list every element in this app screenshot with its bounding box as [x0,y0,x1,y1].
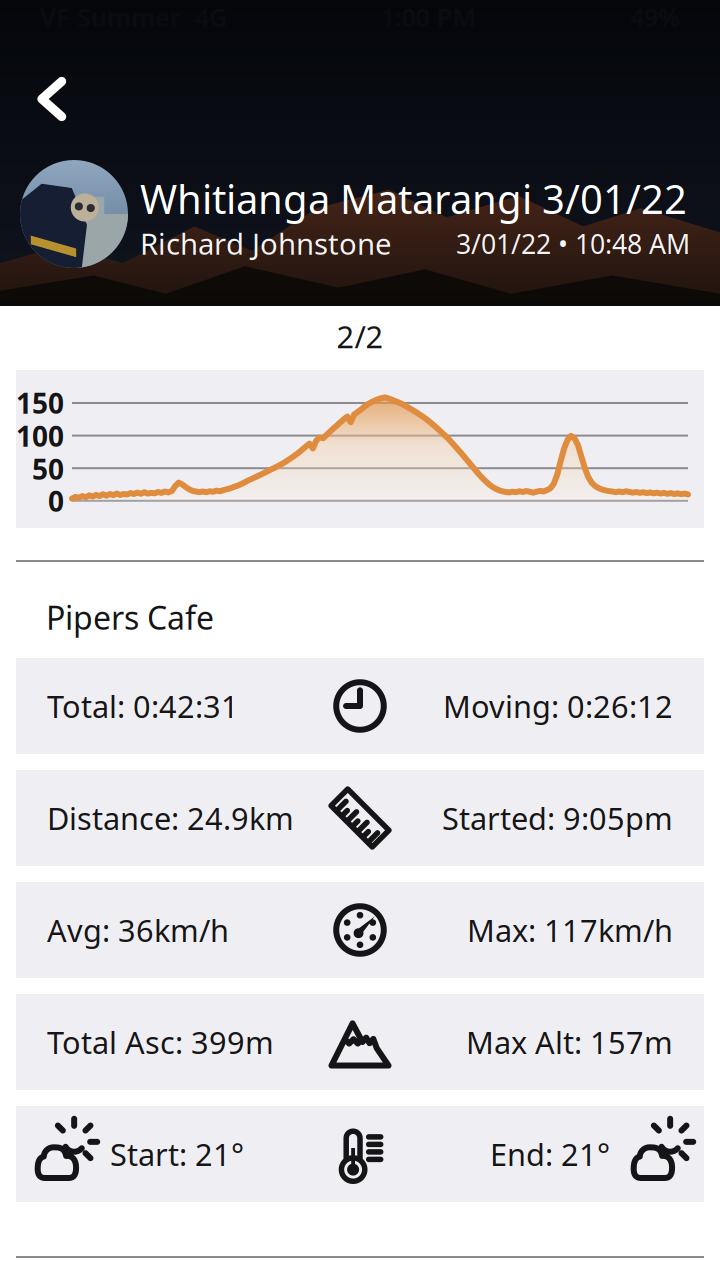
button[interactable]: Total: 0:42:31 [16,658,704,754]
staticText: 50 [32,450,64,488]
staticText: Distance: 24.9km [47,798,294,838]
button[interactable]: Start: 21° [16,1106,704,1202]
button[interactable]: Distance: 24.9km [16,770,704,866]
staticText: Whitianga Matarangi 3/01/22 [140,172,687,225]
button[interactable]: Avg: 36km/h [16,882,704,978]
staticText: Total Asc: 399m [47,1022,274,1062]
button[interactable]: Back [8,55,96,143]
staticText: 2/2 [336,316,383,357]
staticText: Richard Johnstone [140,224,392,263]
staticText: Started: 9:05pm [442,798,673,838]
staticText: End: 21° [490,1134,610,1174]
staticText: Avg: 36km/h [47,910,229,950]
staticText: Moving: 0:26:12 [443,686,673,726]
staticText: Max: 117km/h [467,910,673,950]
staticText: 3/01/22 • 10:48 AM [456,226,690,261]
button[interactable]: Total Asc: 399m [16,994,704,1090]
staticText: 150 [16,384,64,422]
staticText: 0 [48,482,64,520]
staticText: Total: 0:42:31 [47,686,239,726]
staticText: Start: 21° [110,1134,244,1174]
staticText: 100 [16,417,64,455]
staticText: Max Alt: 157m [466,1022,673,1062]
staticText: Pipers Cafe [46,596,214,638]
